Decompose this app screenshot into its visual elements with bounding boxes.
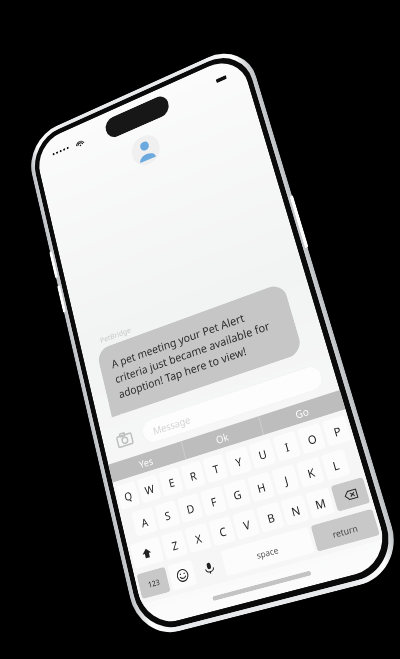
button[interactable]: A pet meeting your Pet Alert criteria ju… <box>96 282 303 418</box>
staticText: Q <box>122 488 134 504</box>
button[interactable]: return <box>310 509 380 552</box>
button[interactable]: D <box>177 493 204 523</box>
button[interactable]: Yes <box>108 441 185 483</box>
button[interactable]: Go <box>259 390 346 435</box>
staticText: P <box>331 423 343 440</box>
button[interactable]: Q <box>116 481 140 510</box>
staticText: PetBridge <box>99 324 132 346</box>
staticText: Y <box>234 453 243 470</box>
staticText: X <box>193 530 203 547</box>
staticText: Z <box>170 537 179 553</box>
staticText: Message <box>151 412 192 438</box>
staticText: S <box>163 507 172 523</box>
staticText: E <box>167 474 176 490</box>
button[interactable]: M <box>305 487 335 519</box>
button[interactable]: H <box>247 471 275 502</box>
button[interactable]: Camera <box>112 425 138 454</box>
staticText: Yes <box>138 453 155 471</box>
button[interactable]: J <box>271 464 300 495</box>
staticText: J <box>282 472 290 488</box>
button[interactable]: Key <box>167 559 197 591</box>
button[interactable]: P <box>322 415 352 447</box>
button[interactable]: W <box>137 474 162 504</box>
button[interactable]: C <box>208 516 236 547</box>
button[interactable]: U <box>248 438 277 469</box>
staticText: H <box>255 479 267 496</box>
button[interactable]: Contact avatar <box>129 131 163 170</box>
button[interactable]: E <box>158 467 184 497</box>
button[interactable]: V <box>232 509 260 540</box>
staticText: G <box>231 486 243 503</box>
button[interactable]: Key <box>330 477 370 512</box>
button[interactable]: O <box>297 423 326 454</box>
button[interactable]: Key <box>193 552 224 584</box>
button[interactable]: Ok <box>182 416 263 460</box>
button[interactable]: X <box>184 522 212 553</box>
staticText: U <box>257 446 268 463</box>
staticText: B <box>265 509 276 526</box>
button[interactable]: K <box>296 456 325 488</box>
button[interactable]: Key <box>129 536 164 569</box>
staticText: A pet meeting your Pet Alert criteria ju… <box>110 299 287 402</box>
staticText: O <box>305 430 319 448</box>
staticText: F <box>209 493 218 510</box>
button[interactable]: N <box>280 494 310 526</box>
button[interactable]: G <box>223 478 251 510</box>
other: Power <box>289 195 309 248</box>
button[interactable]: F <box>200 486 227 516</box>
button[interactable]: Y <box>225 446 252 477</box>
staticText: D <box>185 500 196 517</box>
staticText: 123 <box>147 576 161 589</box>
staticText: T <box>211 461 221 477</box>
staticText: Go <box>293 404 311 421</box>
button[interactable]: I <box>272 430 301 462</box>
button[interactable]: 123 <box>136 567 171 599</box>
staticText: return <box>331 521 359 540</box>
staticText: space <box>255 543 280 561</box>
staticText: Ok <box>214 429 230 447</box>
button[interactable]: S <box>154 500 180 530</box>
staticText: V <box>241 516 252 533</box>
button[interactable]: R <box>180 460 206 490</box>
staticText: N <box>289 502 302 519</box>
button[interactable]: T <box>202 453 229 484</box>
staticText: I <box>283 439 291 455</box>
staticText: A <box>140 514 149 530</box>
staticText: L <box>330 457 341 474</box>
staticText: R <box>188 467 198 484</box>
button[interactable]: Z <box>161 529 188 560</box>
button[interactable]: L <box>321 449 351 481</box>
button[interactable]: A <box>131 506 158 537</box>
button[interactable]: B <box>256 501 285 533</box>
staticText: C <box>217 523 228 540</box>
staticText: M <box>313 494 327 512</box>
button[interactable]: Message <box>140 363 325 445</box>
button[interactable]: space <box>220 527 315 576</box>
staticText: K <box>305 464 317 481</box>
staticText: W <box>143 481 156 498</box>
